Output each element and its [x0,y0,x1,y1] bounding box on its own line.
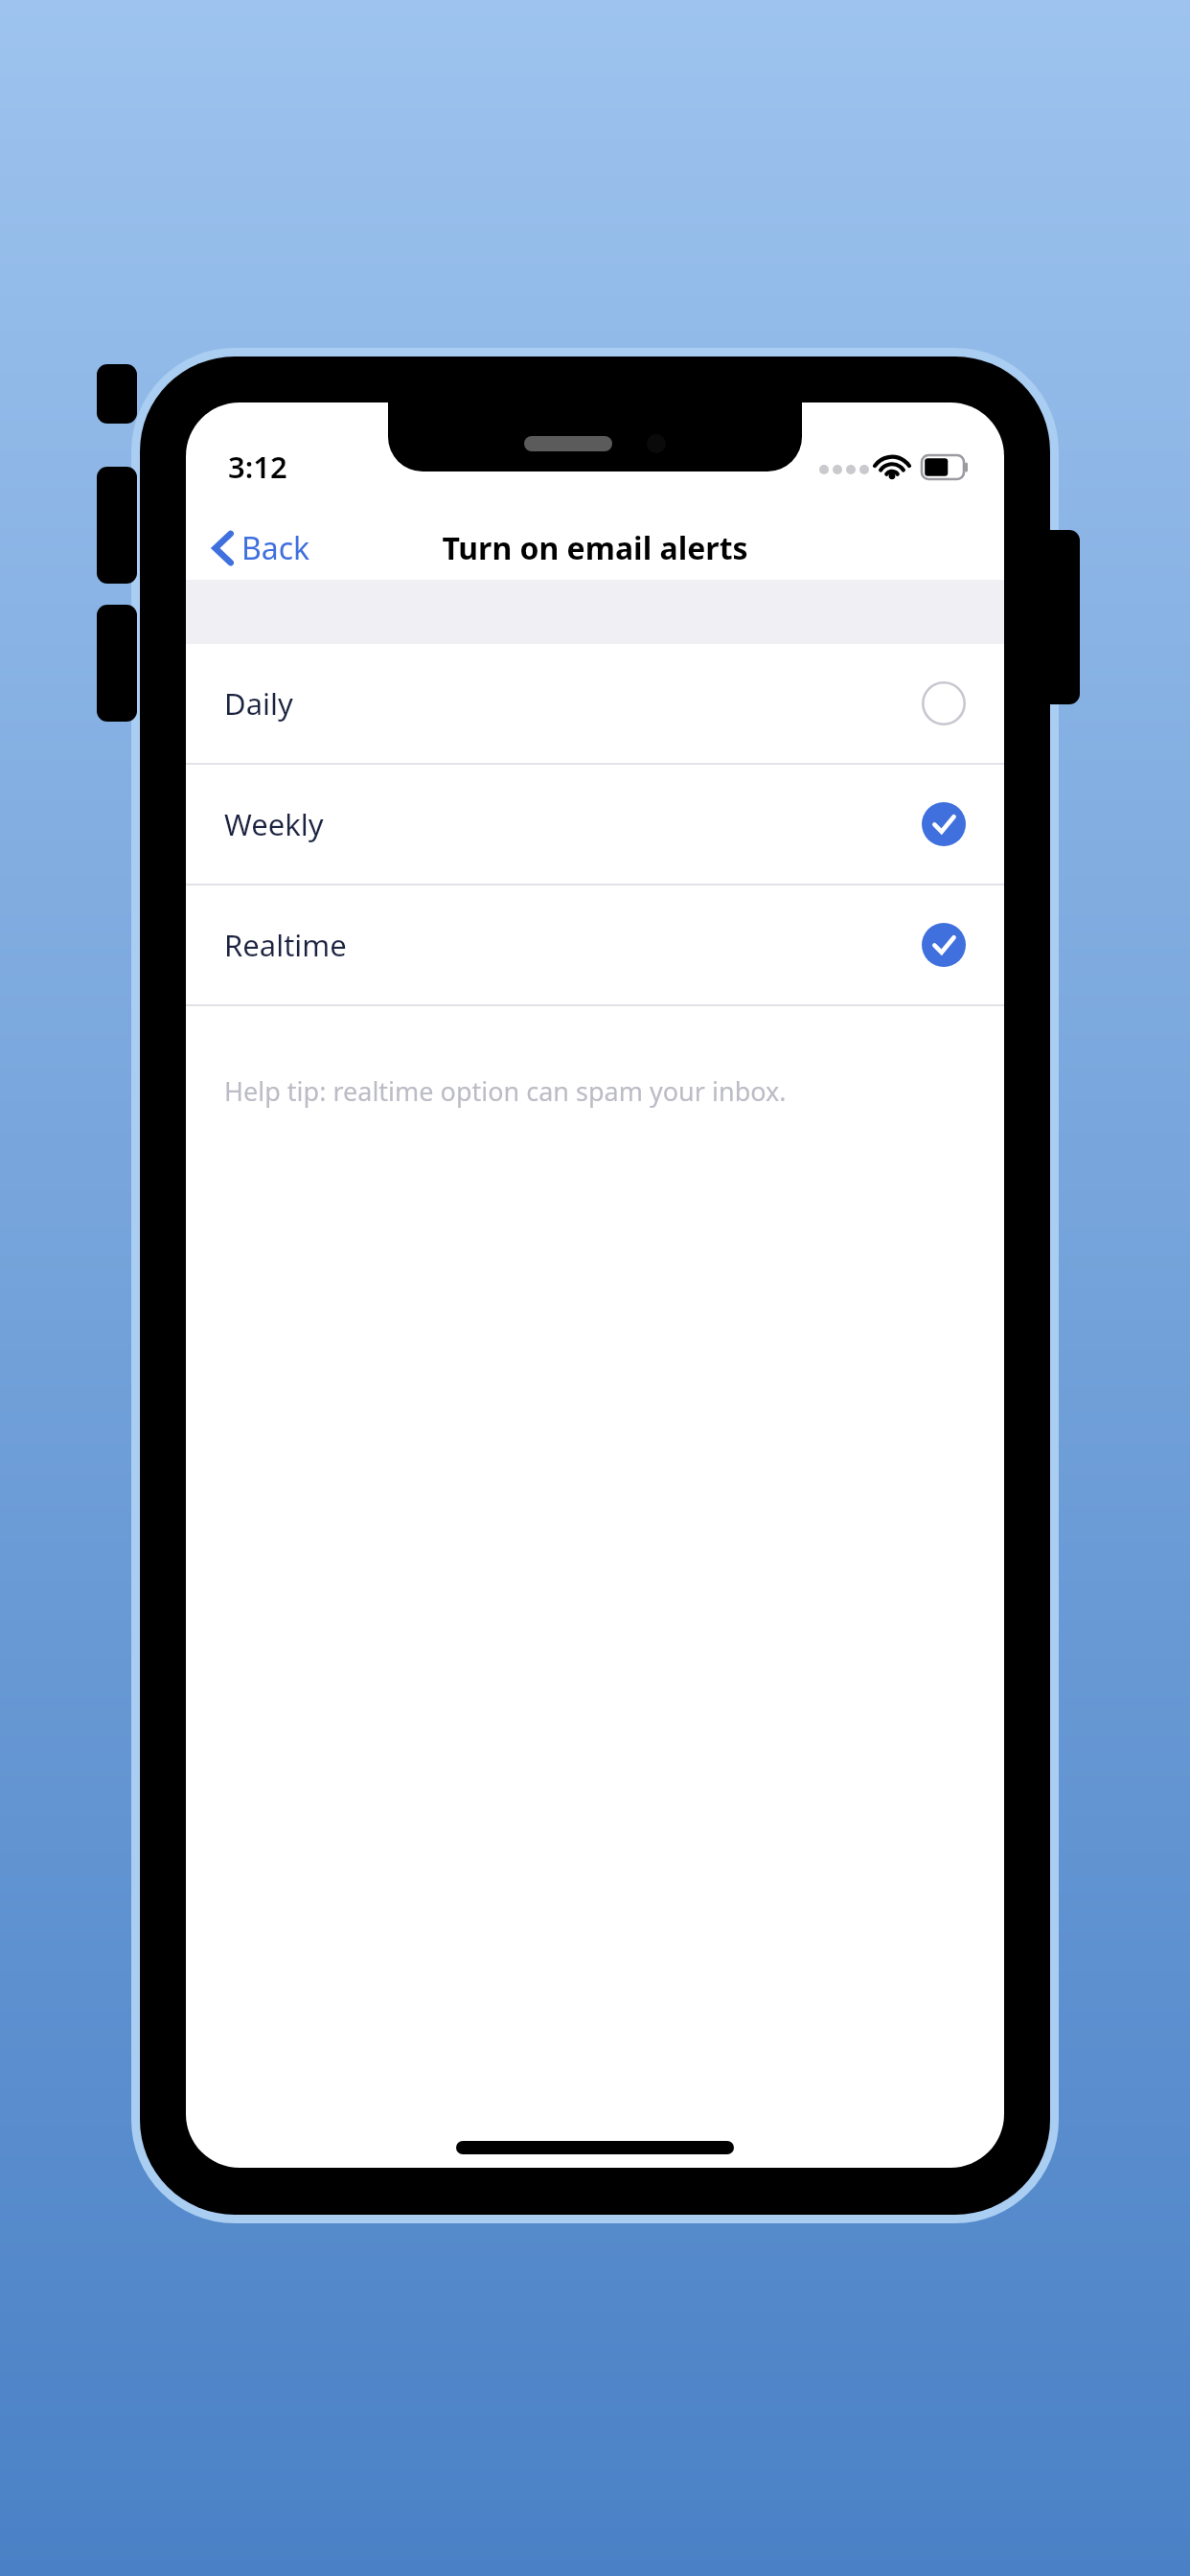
button[interactable]: Daily [186,644,1004,763]
staticText: Daily [224,683,293,724]
staticText: Help tip: realtime option can spam your … [224,1073,787,1109]
staticText: Weekly [224,804,324,844]
staticText: Realtime [224,925,347,965]
button[interactable]: Weekly [186,765,1004,884]
other: Daily not selected [922,681,966,725]
button[interactable]: Back [186,519,326,577]
staticText: Turn on email alerts [442,527,748,569]
button[interactable]: Realtime [186,885,1004,1004]
staticText: 3:12 [228,447,287,487]
staticText: Back [241,527,310,569]
other: Realtime selected [922,923,966,967]
other: Weekly selected [922,802,966,846]
